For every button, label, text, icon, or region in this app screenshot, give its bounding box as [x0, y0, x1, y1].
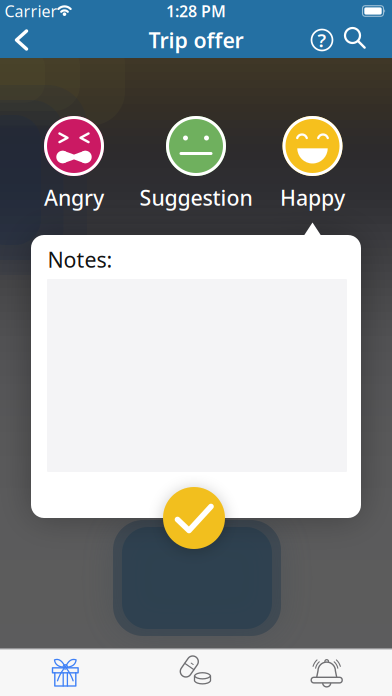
staticText: Trip offer	[148, 26, 243, 54]
staticText: Carrier	[4, 0, 57, 22]
button[interactable]: Notifications	[261, 649, 392, 696]
staticText: Notes:	[47, 245, 112, 274]
button[interactable]: Angry	[14, 116, 134, 208]
staticText: ?	[317, 28, 326, 52]
button[interactable]: Submit	[163, 487, 225, 549]
button[interactable]: Medications	[131, 649, 261, 696]
button[interactable]: Offers	[0, 649, 131, 696]
button[interactable]: Back	[7, 26, 35, 54]
staticText: 1:28 PM	[166, 0, 226, 22]
button[interactable]: Help	[308, 26, 336, 54]
button[interactable]: Search	[342, 25, 370, 53]
staticText: Suggestion	[139, 183, 252, 212]
button[interactable]: Happy	[252, 116, 372, 208]
staticText: Angry	[44, 183, 104, 212]
staticText: Happy	[280, 183, 345, 212]
button[interactable]: Suggestion	[136, 116, 256, 208]
